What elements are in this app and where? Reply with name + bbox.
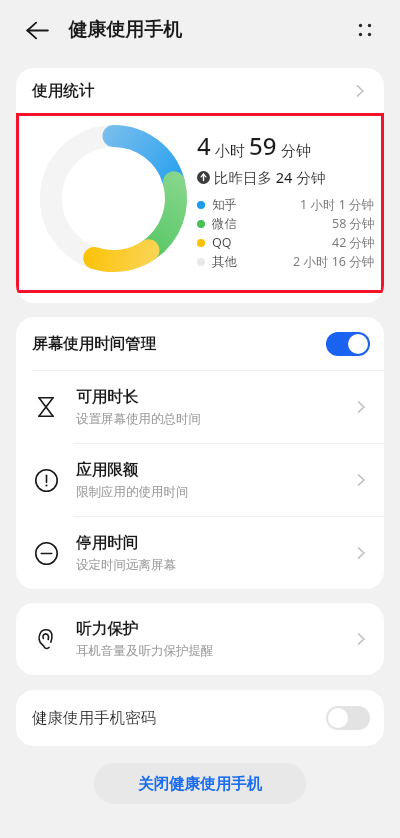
button[interactable]: More options [347, 12, 383, 48]
staticText: 屏幕使用时间管理 [32, 334, 156, 354]
staticText: 听力保护 [76, 619, 138, 639]
button[interactable]: Switch on [326, 332, 370, 356]
staticText: 健康使用手机密码 [32, 708, 156, 728]
staticText: 4 [197, 129, 211, 162]
staticText: 可用时长 [76, 387, 138, 407]
staticText: 关闭健康使用手机 [138, 774, 262, 794]
staticText: 42 分钟 [332, 234, 375, 251]
button[interactable]: 可用时长 [16, 371, 384, 443]
staticText: 微信 [212, 216, 237, 232]
button[interactable]: 应用限额 [16, 444, 384, 516]
button[interactable]: 关闭健康使用手机 [94, 763, 306, 804]
staticText: 59 [249, 129, 277, 162]
button[interactable]: Switch off [326, 706, 370, 730]
button[interactable]: 使用统计 [16, 68, 384, 113]
staticText: 设置屏幕使用的总时间 [76, 411, 201, 427]
staticText: QQ [212, 234, 232, 251]
staticText: 应用限额 [76, 460, 138, 480]
button[interactable]: 停用时间 [16, 517, 384, 589]
button[interactable]: Back [19, 12, 55, 48]
staticText: 2 小时 16 分钟 [293, 253, 375, 270]
staticText: 其他 [212, 254, 237, 270]
staticText: 设定时间远离屏幕 [76, 557, 176, 573]
staticText: 比昨日多 24 分钟 [214, 167, 326, 187]
staticText: 知乎 [212, 197, 237, 213]
staticText: 小时 [211, 140, 249, 160]
staticText: 耳机音量及听力保护提醒 [76, 643, 214, 659]
button[interactable]: 听力保护 [16, 603, 384, 675]
staticText: 限制应用的使用时间 [76, 484, 189, 500]
button[interactable]: 屏幕使用时间管理 [16, 317, 384, 370]
staticText: 使用统计 [32, 81, 94, 101]
staticText: 健康使用手机 [68, 18, 182, 42]
staticText: 停用时间 [76, 533, 138, 553]
staticText: 58 分钟 [332, 215, 375, 232]
staticText: 1 小时 1 分钟 [300, 196, 375, 213]
button[interactable]: 健康使用手机密码 [16, 690, 384, 746]
staticText: 分钟 [277, 140, 311, 160]
